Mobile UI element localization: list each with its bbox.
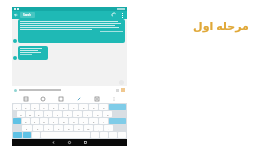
- staticText: q: [20, 113, 22, 116]
- staticText: z: [26, 127, 28, 130]
- button[interactable]: 9: [89, 104, 98, 110]
- staticText: 3: [34, 106, 36, 109]
- button[interactable]: b: [64, 125, 73, 131]
- button[interactable]: 7: [69, 104, 78, 110]
- staticText: t: [57, 113, 58, 116]
- staticText: u: [77, 113, 79, 116]
- staticText: i: [87, 113, 88, 116]
- button[interactable]: Recents: [82, 139, 89, 146]
- staticText: r: [47, 113, 49, 116]
- button[interactable]: Back: [50, 139, 57, 146]
- button[interactable]: [18, 46, 48, 60]
- button[interactable]: [12, 86, 127, 94]
- button[interactable]: y: [63, 111, 72, 117]
- button[interactable]: n: [74, 125, 83, 131]
- staticText: 7: [73, 106, 75, 109]
- staticText: 6: [63, 106, 65, 109]
- button[interactable]: Back: [12, 11, 20, 19]
- button[interactable]: Keyboard layout: [21, 94, 30, 103]
- button[interactable]: 1: [13, 104, 21, 110]
- button[interactable]: k: [89, 118, 98, 124]
- staticText: f: [53, 120, 54, 123]
- button[interactable]: w: [26, 111, 34, 117]
- button[interactable]: Settings: [23, 132, 31, 138]
- button[interactable]: 0: [99, 104, 108, 110]
- button[interactable]: Sarah: [23, 13, 32, 17]
- staticText: 9: [93, 106, 95, 109]
- button[interactable]: x: [33, 125, 43, 131]
- staticText: مرحله اول: [193, 18, 249, 33]
- staticText: s: [34, 120, 36, 123]
- staticText: x: [37, 127, 39, 130]
- button[interactable]: l: [99, 118, 108, 124]
- staticText: j: [83, 120, 84, 123]
- staticText: h: [73, 120, 75, 123]
- button[interactable]: Attach: [74, 94, 83, 103]
- staticText: m: [87, 127, 90, 130]
- staticText: 8: [83, 106, 85, 109]
- button[interactable]: 3: [31, 104, 39, 110]
- button[interactable]: z: [22, 125, 32, 131]
- staticText: v: [58, 127, 60, 130]
- staticText: p: [107, 113, 109, 116]
- staticText: 4: [43, 106, 45, 109]
- button[interactable]: r: [44, 111, 52, 117]
- button[interactable]: 4: [40, 104, 48, 110]
- button[interactable]: o: [93, 111, 102, 117]
- button[interactable]: p: [103, 111, 112, 117]
- button[interactable]: [18, 19, 125, 43]
- button[interactable]: 5: [49, 104, 58, 110]
- button[interactable]: j: [79, 118, 88, 124]
- staticText: n: [78, 127, 80, 130]
- button[interactable]: c: [44, 125, 53, 131]
- button[interactable]: d: [40, 118, 48, 124]
- button[interactable]: g: [59, 118, 68, 124]
- button[interactable]: More options: [118, 11, 126, 19]
- button[interactable]: Language: [13, 118, 21, 124]
- staticText: w: [29, 113, 31, 116]
- button[interactable]: Camera: [92, 94, 101, 103]
- button[interactable]: e: [35, 111, 43, 117]
- staticText: 1: [16, 106, 18, 109]
- staticText: e: [38, 113, 40, 116]
- button[interactable]: Symbols: [13, 132, 22, 138]
- button[interactable]: Call: [110, 11, 118, 19]
- button[interactable]: f: [49, 118, 58, 124]
- button[interactable]: a: [22, 118, 30, 124]
- staticText: k: [93, 120, 95, 123]
- button[interactable]: Home: [66, 139, 73, 146]
- button[interactable]: GIF: [56, 94, 65, 103]
- button[interactable]: Emoji: [38, 94, 47, 103]
- staticText: a: [25, 120, 27, 123]
- staticText: o: [97, 113, 99, 116]
- button[interactable]: t: [53, 111, 62, 117]
- button[interactable]: u: [73, 111, 82, 117]
- button[interactable]: 6: [59, 104, 68, 110]
- staticText: Sarah: [23, 13, 32, 17]
- button[interactable]: 2: [22, 104, 30, 110]
- button[interactable]: s: [31, 118, 39, 124]
- staticText: 0: [103, 106, 105, 109]
- button[interactable]: q: [17, 111, 25, 117]
- button[interactable]: i: [83, 111, 92, 117]
- button[interactable]: 8: [79, 104, 88, 110]
- staticText: c: [48, 127, 50, 130]
- button[interactable]: m: [84, 125, 93, 131]
- staticText: .: [108, 127, 109, 130]
- button[interactable]: v: [54, 125, 63, 131]
- staticText: d: [43, 120, 45, 123]
- button[interactable]: More: [109, 94, 118, 103]
- button[interactable]: h: [69, 118, 78, 124]
